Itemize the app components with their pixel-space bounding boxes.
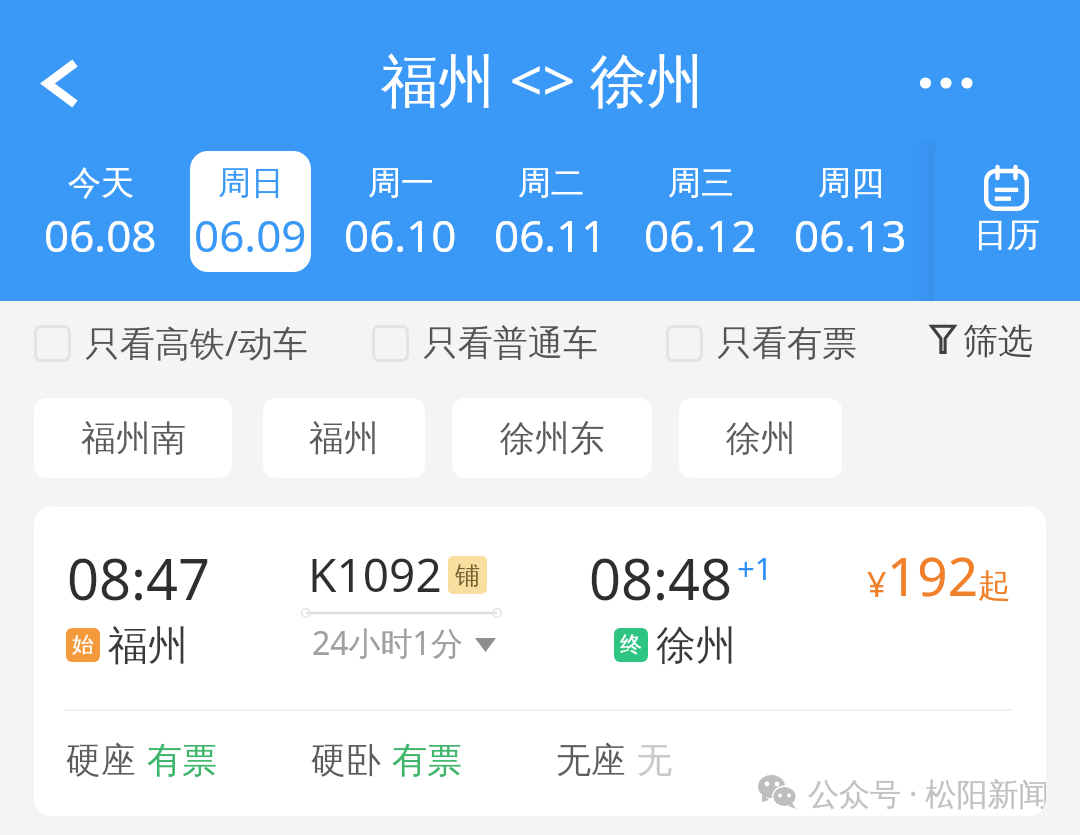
staticText: ¥ [867, 561, 887, 607]
staticText: 有票 [147, 738, 217, 782]
button[interactable]: Back [29, 40, 117, 128]
staticText: 福州 [309, 416, 379, 460]
button[interactable]: 福州南 [34, 398, 232, 478]
staticText: 只看有票 [717, 321, 857, 365]
button[interactable]: 只看高铁/动车 [34, 317, 309, 369]
staticText: 徐州 [656, 620, 736, 670]
staticText: 筛选 [963, 319, 1033, 363]
staticText: 今天 [68, 162, 134, 204]
staticText: 周一 [368, 162, 434, 204]
button[interactable]: 今天 [25, 151, 175, 272]
staticText: 徐州东 [500, 416, 605, 460]
button[interactable]: 周三 [625, 151, 775, 272]
staticText: 周四 [818, 162, 884, 204]
staticText: 硬座 [66, 738, 136, 782]
button[interactable]: 08:47 [34, 507, 1046, 816]
staticText: 周日 [218, 162, 284, 204]
staticText: 日历 [974, 214, 1040, 256]
staticText: 周二 [518, 162, 584, 204]
staticText: 192 [887, 539, 978, 611]
staticText: 24小时1分 [312, 621, 463, 665]
button[interactable]: 徐州 [679, 398, 842, 478]
staticText: 08:47 [67, 540, 211, 616]
staticText: 福州 <> 徐州 [381, 40, 704, 118]
staticText: 只看普通车 [423, 321, 598, 365]
staticText: 06.08 [44, 205, 157, 265]
staticText: 周三 [668, 162, 734, 204]
staticText: K1092 [308, 543, 442, 606]
button[interactable]: More options [900, 58, 992, 108]
staticText: 徐州 [726, 416, 796, 460]
button[interactable]: 筛选 [930, 315, 1033, 367]
staticText: 有票 [392, 738, 462, 782]
staticText: 福州 [108, 620, 188, 670]
staticText: 06.12 [644, 205, 757, 265]
button[interactable]: Calendar [934, 151, 1080, 301]
button[interactable]: 只看有票 [666, 317, 857, 369]
button[interactable]: 福州 [263, 398, 425, 478]
staticText: +1 [737, 547, 773, 589]
staticText: 福州南 [81, 416, 186, 460]
staticText: 06.10 [344, 205, 457, 265]
staticText: 只看高铁/动车 [85, 319, 309, 367]
button[interactable]: 周一 [325, 151, 475, 272]
staticText: 06.13 [794, 205, 907, 265]
staticText: 起 [978, 565, 1011, 607]
button[interactable]: 周四 [775, 151, 925, 272]
staticText: 始 [72, 631, 94, 659]
button[interactable]: 周二 [475, 151, 625, 272]
staticText: 06.11 [494, 205, 607, 265]
button[interactable]: 周日 [175, 151, 325, 272]
staticText: 公众号 · 松阳新闻 [808, 772, 1046, 814]
staticText: 铺 [455, 560, 480, 591]
staticText: 无 [637, 738, 672, 782]
staticText: 无座 [556, 738, 626, 782]
button[interactable]: 徐州东 [452, 398, 652, 478]
staticText: 06.09 [194, 205, 307, 265]
staticText: 硬卧 [311, 738, 381, 782]
staticText: 终 [620, 631, 642, 659]
button[interactable]: 只看普通车 [372, 317, 598, 369]
staticText: 08:48 [589, 540, 733, 616]
